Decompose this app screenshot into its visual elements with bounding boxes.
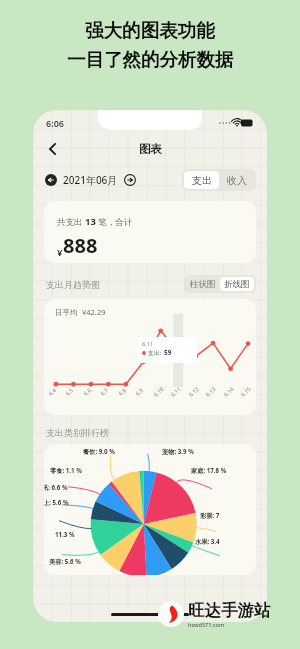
button[interactable]: Previous month: [45, 174, 57, 186]
staticText: 宠物: 3.9 %: [162, 447, 194, 455]
staticText: 支出:: [148, 349, 164, 357]
staticText: 讯: 6.6 %: [44, 483, 68, 491]
staticText: 6.5: [64, 386, 74, 397]
staticText: 6.13: [204, 385, 217, 398]
staticText: 收入: [227, 174, 247, 187]
staticText: 支出: [192, 174, 212, 187]
staticText: 旺达手游站: [188, 600, 271, 621]
staticText: 家庭: 17.8 %: [191, 466, 227, 474]
button[interactable]: 共支出: [44, 201, 256, 263]
staticText: 6.12: [187, 385, 200, 398]
button[interactable]: 日平均: [44, 299, 256, 415]
button[interactable]: Back: [44, 140, 62, 158]
staticText: 6.15: [239, 385, 252, 398]
staticText: 图表: [139, 142, 162, 156]
staticText: 6.4: [47, 386, 57, 397]
staticText: 6.11: [142, 340, 153, 347]
staticText: ¥42.29: [82, 307, 106, 317]
staticText: 6.7: [99, 386, 109, 397]
staticText: 6.8: [117, 386, 127, 397]
staticText: 6.11: [169, 385, 182, 398]
staticText: 2021年06月: [63, 173, 118, 187]
staticText: 强大的图表功能: [85, 19, 215, 42]
staticText: 888: [63, 232, 98, 259]
button[interactable]: 折线图: [220, 277, 254, 291]
staticText: ¥: [57, 246, 63, 259]
staticText: 6:06: [46, 117, 64, 129]
staticText: 水果: 3.4: [195, 537, 220, 545]
staticText: 59: [164, 348, 172, 357]
staticText: 日平均: [55, 308, 78, 317]
staticText: 彩票: 7: [200, 511, 220, 519]
staticText: hzwd571.com: [188, 621, 225, 628]
button[interactable]: 收入: [219, 171, 254, 189]
staticText: 13: [85, 215, 96, 228]
staticText: 6.6: [82, 386, 92, 397]
staticText: 笔，合计: [96, 216, 133, 228]
staticText: 餐饮: 9.0 %: [83, 447, 115, 455]
staticText: 共支出: [57, 216, 85, 228]
staticText: 零食: 1.1 %: [50, 466, 82, 474]
staticText: 11.3 %: [55, 530, 75, 538]
button[interactable]: Next month: [124, 174, 136, 186]
staticText: 支出类别排行榜: [46, 427, 109, 438]
staticText: 6.14: [222, 385, 235, 398]
staticText: 一目了然的分析数据: [67, 48, 234, 71]
button[interactable]: 餐饮: 9.0 %: [44, 444, 256, 575]
staticText: 6.10: [152, 385, 165, 398]
staticText: 支出月趋势图: [46, 279, 100, 290]
staticText: 柱状图: [190, 279, 216, 290]
staticText: 美容: 5.6 %: [49, 557, 81, 565]
button[interactable]: 柱状图: [186, 277, 220, 291]
button[interactable]: 支出: [184, 171, 219, 189]
staticText: 6.9: [134, 386, 144, 397]
staticText: 上: 5.6 %: [44, 498, 69, 506]
staticText: 折线图: [224, 279, 250, 290]
